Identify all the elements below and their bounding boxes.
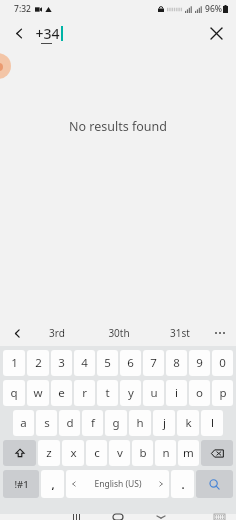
button[interactable]: 7 bbox=[143, 350, 164, 376]
staticText: !#1 bbox=[14, 478, 29, 491]
staticText: z bbox=[46, 445, 52, 461]
button[interactable]: Home bbox=[105, 514, 131, 520]
staticText: p bbox=[219, 385, 227, 401]
button[interactable]: . bbox=[171, 470, 194, 498]
button[interactable]: , bbox=[41, 470, 64, 498]
staticText: . bbox=[181, 477, 185, 492]
button[interactable]: More options bbox=[209, 322, 231, 344]
button[interactable]: g bbox=[105, 410, 127, 436]
button[interactable]: w bbox=[27, 380, 49, 406]
button[interactable]: 3 bbox=[51, 350, 72, 376]
staticText: j bbox=[163, 415, 166, 431]
button[interactable]: q bbox=[3, 380, 25, 406]
staticText: 31st bbox=[170, 326, 190, 340]
button[interactable]: m bbox=[178, 440, 199, 466]
button[interactable]: 3rd bbox=[26, 320, 88, 346]
staticText: h bbox=[136, 415, 144, 431]
staticText: v bbox=[117, 445, 123, 461]
staticText: g bbox=[112, 415, 120, 431]
staticText: q bbox=[10, 385, 18, 401]
button[interactable]: k bbox=[177, 410, 199, 436]
button[interactable]: z bbox=[38, 440, 60, 466]
staticText: e bbox=[58, 385, 65, 401]
button[interactable]: 1 bbox=[3, 350, 25, 376]
staticText: 9 bbox=[196, 355, 203, 371]
button[interactable]: u bbox=[143, 380, 164, 406]
staticText: 2 bbox=[35, 355, 42, 371]
button[interactable]: Clear bbox=[203, 20, 229, 46]
button[interactable]: c bbox=[86, 440, 107, 466]
button[interactable]: f bbox=[82, 410, 103, 436]
button[interactable]: s bbox=[36, 410, 57, 436]
button[interactable]: Search bbox=[196, 470, 233, 498]
button[interactable]: Hide keyboard bbox=[148, 514, 174, 520]
button[interactable]: 2 bbox=[27, 350, 49, 376]
button[interactable]: Space, English (US) bbox=[66, 470, 169, 498]
staticText: 0 bbox=[219, 355, 226, 371]
button[interactable]: 6 bbox=[120, 350, 141, 376]
staticText: +34 bbox=[35, 24, 60, 43]
staticText: English (US) bbox=[94, 478, 142, 490]
button[interactable]: o bbox=[189, 380, 210, 406]
button[interactable]: e bbox=[51, 380, 72, 406]
button[interactable]: 5 bbox=[97, 350, 118, 376]
button[interactable]: a bbox=[13, 410, 34, 436]
button[interactable]: v bbox=[109, 440, 130, 466]
button[interactable]: n bbox=[155, 440, 176, 466]
staticText: , bbox=[51, 477, 55, 492]
staticText: f bbox=[91, 415, 95, 431]
staticText: 30th bbox=[108, 326, 130, 340]
staticText: u bbox=[150, 385, 158, 401]
staticText: 4 bbox=[81, 355, 88, 371]
button[interactable]: b bbox=[132, 440, 153, 466]
staticText: 3 bbox=[58, 355, 65, 371]
staticText: b bbox=[139, 445, 147, 461]
staticText: a bbox=[20, 415, 27, 431]
button[interactable]: 9 bbox=[189, 350, 210, 376]
staticText: 3rd bbox=[49, 326, 65, 340]
staticText: x bbox=[70, 445, 77, 461]
staticText: k bbox=[185, 415, 192, 431]
button[interactable]: Back bbox=[6, 20, 32, 46]
staticText: No results found bbox=[69, 118, 167, 135]
staticText: c bbox=[94, 445, 100, 461]
staticText: 8 bbox=[173, 355, 180, 371]
button[interactable]: 0 bbox=[212, 350, 233, 376]
staticText: 96% bbox=[205, 3, 222, 15]
button[interactable]: Switch keyboard bbox=[208, 514, 230, 520]
button[interactable]: l bbox=[201, 410, 223, 436]
button[interactable]: 4 bbox=[74, 350, 95, 376]
staticText: 5 bbox=[104, 355, 111, 371]
button[interactable]: p bbox=[212, 380, 233, 406]
staticText: o bbox=[196, 385, 203, 401]
button[interactable]: Backspace bbox=[201, 440, 233, 466]
staticText: 1 bbox=[11, 355, 18, 371]
staticText: n bbox=[162, 445, 170, 461]
staticText: l bbox=[211, 415, 214, 431]
staticText: r bbox=[82, 385, 87, 401]
staticText: t bbox=[105, 385, 110, 401]
button[interactable]: Recents bbox=[63, 514, 89, 520]
button[interactable]: !#1 bbox=[3, 470, 39, 498]
button[interactable]: t bbox=[97, 380, 118, 406]
button[interactable]: r bbox=[74, 380, 95, 406]
button[interactable]: h bbox=[129, 410, 151, 436]
staticText: y bbox=[128, 385, 134, 401]
button[interactable]: Previous suggestions bbox=[6, 322, 28, 344]
button[interactable]: d bbox=[59, 410, 80, 436]
staticText: s bbox=[44, 415, 50, 431]
button[interactable]: 31st bbox=[149, 320, 210, 346]
staticText: 7:32 bbox=[14, 3, 31, 15]
button[interactable]: 8 bbox=[166, 350, 187, 376]
button[interactable]: 30th bbox=[88, 320, 149, 346]
staticText: w bbox=[33, 385, 43, 401]
staticText: d bbox=[66, 415, 74, 431]
button[interactable]: i bbox=[166, 380, 187, 406]
button[interactable]: x bbox=[62, 440, 84, 466]
staticText: 7 bbox=[150, 355, 157, 371]
button[interactable]: j bbox=[153, 410, 175, 436]
button[interactable]: Shift bbox=[3, 440, 36, 466]
button[interactable]: y bbox=[120, 380, 141, 406]
staticText: m bbox=[183, 445, 194, 461]
staticText: i bbox=[175, 385, 178, 401]
